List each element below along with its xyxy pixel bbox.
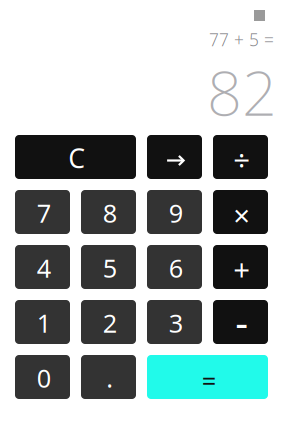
staticText: 7 — [37, 196, 51, 230]
staticText: 77 + 5 = — [209, 28, 274, 51]
button[interactable]: Add — [213, 245, 268, 289]
staticText: 8 — [103, 196, 117, 230]
staticText: 9 — [169, 196, 183, 230]
button[interactable]: 7 — [15, 190, 70, 234]
staticText: C — [68, 140, 85, 176]
button[interactable]: 9 — [147, 190, 202, 234]
button[interactable]: 4 — [15, 245, 70, 289]
staticText: + — [233, 249, 250, 288]
staticText: 4 — [37, 251, 51, 285]
button[interactable]: 6 — [147, 245, 202, 289]
button[interactable]: Divide — [213, 135, 268, 179]
button[interactable]: 2 — [81, 300, 136, 344]
staticText: × — [233, 195, 250, 234]
staticText: . — [106, 361, 113, 395]
button[interactable]: 0 — [15, 355, 70, 399]
staticText: 82 — [207, 51, 277, 133]
button[interactable]: 5 — [81, 245, 136, 289]
button[interactable]: Next — [147, 135, 202, 179]
button[interactable]: Equals — [147, 355, 268, 399]
staticText: 6 — [169, 251, 183, 285]
staticText: 1 — [37, 306, 51, 340]
staticText: ÷ — [233, 140, 250, 179]
button[interactable]: 1 — [15, 300, 70, 344]
staticText: 2 — [103, 306, 117, 340]
staticText: 5 — [103, 251, 117, 285]
staticText: 0 — [37, 361, 51, 395]
button[interactable]: 3 — [147, 300, 202, 344]
staticText: = — [202, 364, 216, 398]
button[interactable]: Multiply — [213, 190, 268, 234]
button[interactable]: Clear — [15, 135, 136, 179]
button[interactable]: Decimal point — [81, 355, 136, 399]
staticText: - — [235, 295, 248, 348]
button[interactable]: Subtract — [213, 300, 268, 344]
staticText: 3 — [169, 306, 183, 340]
button[interactable]: 8 — [81, 190, 136, 234]
